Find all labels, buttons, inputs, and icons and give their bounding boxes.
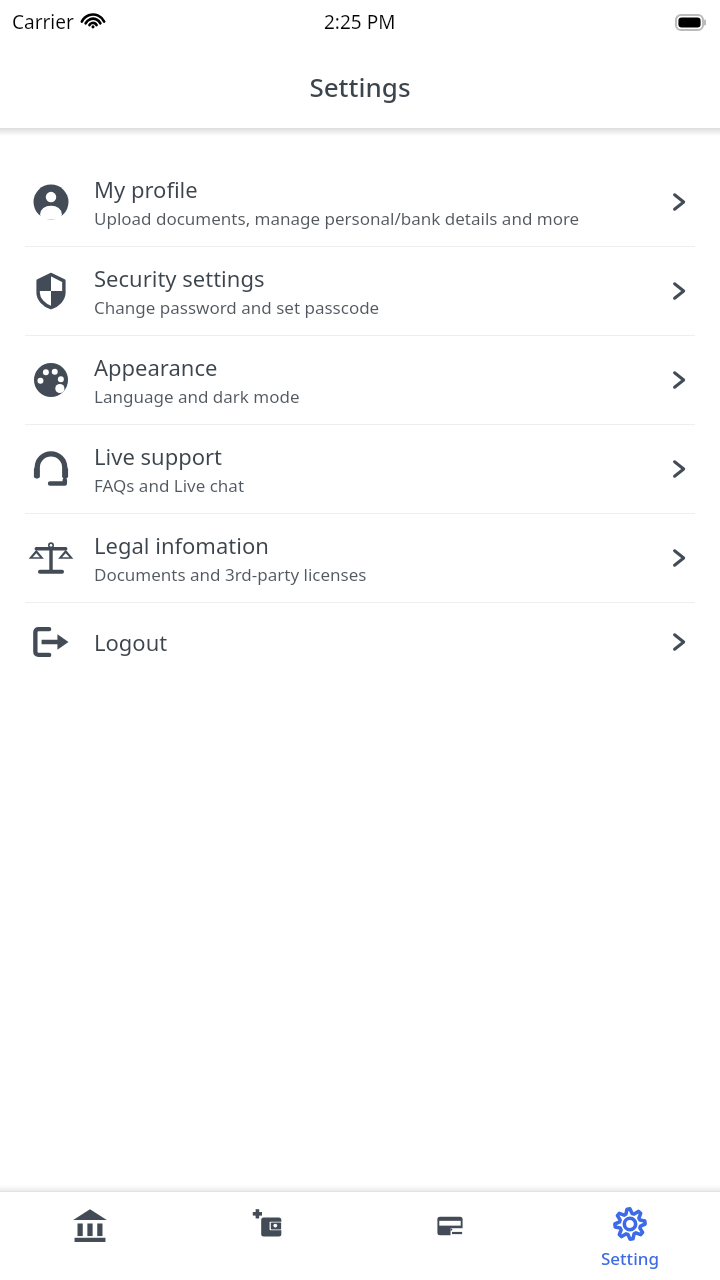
button[interactable]: My profile — [10, 158, 710, 246]
staticText: My profile — [94, 174, 198, 204]
staticText: Live support — [94, 441, 223, 471]
staticText: Language and dark mode — [94, 385, 300, 408]
button[interactable]: Security settings — [10, 247, 710, 335]
staticText: Upload documents, manage personal/bank d… — [94, 207, 580, 230]
staticText: 2:25 PM — [324, 9, 396, 35]
button[interactable]: Setting — [540, 1192, 720, 1280]
staticText: Carrier — [12, 9, 74, 35]
staticText: Logout — [94, 627, 168, 657]
button[interactable]: Cards — [360, 1192, 540, 1280]
staticText: FAQs and Live chat — [94, 474, 245, 497]
staticText: Setting — [601, 1247, 659, 1270]
button[interactable]: Logout — [10, 603, 710, 681]
button[interactable]: Legal infomation — [10, 514, 710, 602]
button[interactable]: Live support — [10, 425, 710, 513]
staticText: Change password and set passcode — [94, 296, 380, 319]
staticText: Security settings — [94, 263, 265, 293]
button[interactable]: Add funds — [180, 1192, 360, 1280]
staticText: Documents and 3rd-party licenses — [94, 563, 367, 586]
button[interactable]: Accounts — [0, 1192, 180, 1280]
staticText: Legal infomation — [94, 530, 269, 560]
staticText: Settings — [309, 69, 411, 104]
staticText: Appearance — [94, 352, 218, 382]
button[interactable]: Appearance — [10, 336, 710, 424]
